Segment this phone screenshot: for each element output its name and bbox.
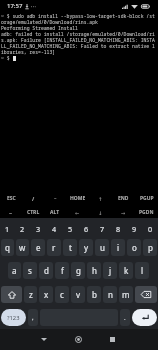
button[interactable]: d xyxy=(39,262,53,279)
button[interactable]: ↓ xyxy=(89,207,112,218)
button[interactable]: / xyxy=(22,193,44,204)
staticText: r xyxy=(52,242,56,253)
staticText: 3 xyxy=(36,224,41,234)
button[interactable]: END xyxy=(112,193,135,204)
staticText: ~ $ sudo adb install --bypass-low-target… xyxy=(1,13,155,19)
button[interactable]: 5 xyxy=(62,218,78,239)
staticText: ~ $ xyxy=(1,55,13,61)
staticText: 1 xyxy=(5,224,10,234)
staticText: s xyxy=(28,265,32,276)
button[interactable]: Backspace xyxy=(135,286,157,303)
button[interactable]: 2 xyxy=(15,218,30,239)
staticText: q xyxy=(5,242,10,253)
button[interactable]: m xyxy=(119,286,133,303)
staticText: CTRL xyxy=(27,209,40,216)
button[interactable]: 4 xyxy=(46,218,62,239)
staticText: / xyxy=(32,195,35,202)
button[interactable]: , xyxy=(28,309,38,326)
button[interactable]: Recents xyxy=(95,329,129,350)
button[interactable]: 6 xyxy=(78,218,94,239)
button[interactable]: Shift xyxy=(1,286,22,303)
staticText: 9 xyxy=(132,224,137,234)
button[interactable]: w xyxy=(16,239,29,256)
button[interactable]: ← xyxy=(66,207,89,218)
staticText: ibraries, res=-113] xyxy=(1,49,56,55)
button[interactable]: v xyxy=(71,286,85,303)
button[interactable]: h xyxy=(87,262,101,279)
button[interactable]: 8 xyxy=(110,218,126,239)
staticText: PGUP xyxy=(140,195,154,202)
button[interactable]: q xyxy=(1,239,14,256)
button[interactable]: PGDN xyxy=(135,207,158,218)
button[interactable]: e xyxy=(31,239,45,256)
button[interactable]: – xyxy=(44,193,66,204)
button[interactable]: j xyxy=(103,262,117,279)
staticText: t xyxy=(69,242,72,253)
staticText: f xyxy=(61,265,64,276)
button[interactable]: b xyxy=(87,286,101,303)
button[interactable]: Back xyxy=(26,329,61,350)
staticText: o xyxy=(132,242,137,253)
staticText: 17:57 xyxy=(7,2,23,10)
button[interactable]: 9 xyxy=(126,218,142,239)
staticText: x xyxy=(44,289,49,300)
button[interactable]: Enter xyxy=(132,309,157,326)
button[interactable]: ?123 xyxy=(1,309,26,326)
staticText: 6 xyxy=(84,224,89,234)
button[interactable]: k xyxy=(119,262,133,279)
staticText: ALT xyxy=(50,209,60,216)
staticText: u xyxy=(100,242,105,253)
button[interactable]: z xyxy=(24,286,37,303)
staticText: orage/emulated/0/Download/rins.apk xyxy=(1,19,98,25)
staticText: 5 xyxy=(68,224,73,234)
staticText: m xyxy=(122,289,130,300)
staticText: b xyxy=(92,289,97,300)
staticText: . xyxy=(124,314,126,322)
button[interactable]: ESC xyxy=(0,193,22,204)
staticText: 0 xyxy=(148,224,153,234)
button[interactable]: f xyxy=(55,262,69,279)
staticText: j xyxy=(109,265,112,276)
button[interactable]: o xyxy=(127,239,141,256)
button[interactable]: 0 xyxy=(142,218,158,239)
staticText: p xyxy=(148,242,153,253)
button[interactable]: 7 xyxy=(94,218,110,239)
button[interactable]: 3 xyxy=(30,218,46,239)
button[interactable]: g xyxy=(71,262,85,279)
button[interactable]: PGUP xyxy=(135,193,158,204)
staticText: , xyxy=(32,314,34,322)
staticText: 4 xyxy=(52,224,57,234)
staticText: i xyxy=(117,242,120,253)
button[interactable]: . xyxy=(120,309,130,326)
button[interactable]: a xyxy=(8,262,21,279)
button[interactable]: p xyxy=(143,239,157,256)
staticText: a xyxy=(12,265,17,276)
staticText: 2 xyxy=(20,224,25,234)
button[interactable]: x xyxy=(39,286,53,303)
button[interactable]: s xyxy=(23,262,37,279)
staticText: adb: failed to install /storage/emulated… xyxy=(1,31,155,37)
staticText: d xyxy=(44,265,49,276)
staticText: s.apk: Failure [INSTALL_FAILED_NO_MATCHI… xyxy=(1,37,155,43)
button[interactable]: c xyxy=(55,286,69,303)
button[interactable]: t xyxy=(63,239,77,256)
button[interactable]: l xyxy=(135,262,149,279)
button[interactable]: ↑ xyxy=(89,193,112,204)
button[interactable]: y xyxy=(79,239,93,256)
button[interactable]: CTRL xyxy=(22,207,44,218)
button[interactable]: n xyxy=(103,286,117,303)
button[interactable]: HOME xyxy=(66,193,89,204)
staticText: w xyxy=(19,242,26,253)
button[interactable]: i xyxy=(111,239,125,256)
staticText: y xyxy=(84,242,89,253)
staticText: Performing Streamed Install xyxy=(1,25,78,31)
button[interactable]: Home xyxy=(61,329,95,350)
button[interactable]: 1 xyxy=(0,218,15,239)
button[interactable]: ~ xyxy=(0,207,22,218)
button[interactable]: u xyxy=(95,239,109,256)
button[interactable]: → xyxy=(112,207,135,218)
button[interactable]: ALT xyxy=(44,207,66,218)
staticText: ?123 xyxy=(7,314,20,322)
button[interactable]: r xyxy=(47,239,61,256)
